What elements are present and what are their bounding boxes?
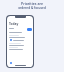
button[interactable]: Today <box>9 22 19 26</box>
staticText: Today <box>9 22 19 26</box>
staticText: Priorities are <box>21 1 43 6</box>
staticText: ordered & focused <box>18 6 46 10</box>
button[interactable]: Add <box>27 28 32 31</box>
